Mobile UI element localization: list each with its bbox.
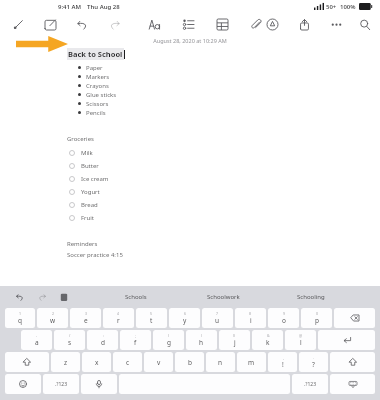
staticText: Scissors	[86, 100, 109, 108]
button[interactable]: 3	[70, 308, 101, 328]
staticText: f	[134, 338, 137, 347]
staticText: 0	[316, 311, 319, 316]
button[interactable]: Schoolwork	[180, 286, 267, 307]
button[interactable]: (	[153, 330, 184, 350]
staticText: 2	[52, 311, 55, 316]
button[interactable]: 2	[37, 308, 68, 328]
staticText: .?123	[55, 381, 68, 388]
staticText: Reminders	[67, 240, 98, 248]
button[interactable]: Dictation	[81, 374, 117, 394]
staticText: Thu Aug 28	[87, 3, 120, 11]
button[interactable]: Emoji	[5, 374, 41, 394]
staticText: e	[84, 316, 88, 325]
button[interactable]: Checklist	[180, 16, 196, 32]
button[interactable]: Undo	[74, 16, 90, 32]
button[interactable]: m	[237, 352, 266, 372]
button[interactable]: Search	[360, 16, 370, 32]
button[interactable]: Format	[146, 16, 162, 32]
button[interactable]: Fruit	[67, 211, 380, 224]
button[interactable]: Backspace	[334, 308, 375, 328]
button[interactable]: Ice cream	[67, 172, 380, 185]
button[interactable]: n	[206, 352, 235, 372]
button[interactable]: .?123	[43, 374, 79, 394]
staticText: Bread	[81, 201, 98, 209]
button[interactable]: v	[144, 352, 173, 372]
staticText: p	[315, 316, 319, 325]
button[interactable]: Paper	[67, 63, 380, 72]
button[interactable]: 7	[202, 308, 233, 328]
staticText: Paper	[86, 64, 103, 72]
button[interactable]: Redo	[106, 16, 122, 32]
button[interactable]: .	[299, 352, 328, 372]
button[interactable]: 1	[5, 308, 35, 328]
button[interactable]: Markers	[67, 72, 380, 81]
button[interactable]: Schools	[92, 286, 180, 307]
button[interactable]: Yogurt	[67, 185, 380, 198]
staticText: q	[18, 316, 22, 325]
staticText: Milk	[81, 149, 93, 157]
button[interactable]: )	[186, 330, 217, 350]
button[interactable]: 6	[169, 308, 200, 328]
button[interactable]: Butter	[67, 159, 380, 172]
button[interactable]: More	[328, 16, 344, 32]
button[interactable]: Return	[318, 330, 375, 350]
staticText: v	[157, 358, 161, 367]
button[interactable]: Hide keyboard	[330, 374, 375, 394]
button[interactable]: 4	[103, 308, 134, 328]
staticText: h	[199, 338, 204, 347]
button[interactable]: Markup	[10, 16, 26, 32]
button[interactable]: Compose	[42, 16, 58, 32]
staticText: Schoolwork	[207, 293, 240, 301]
staticText: k	[266, 338, 270, 347]
button[interactable]: Redo	[36, 291, 48, 303]
button[interactable]: z	[51, 352, 80, 372]
button[interactable]: Bread	[67, 198, 380, 211]
staticText: ?	[312, 360, 315, 369]
button[interactable]: Table	[214, 16, 230, 32]
staticText: n	[218, 358, 223, 367]
button[interactable]: 0	[301, 308, 332, 328]
button[interactable]: Shift	[5, 352, 49, 372]
staticText: t	[150, 316, 153, 325]
button[interactable]: /	[54, 330, 85, 350]
staticText: (	[168, 333, 170, 338]
button[interactable]: x	[82, 352, 111, 372]
staticText: )	[201, 333, 203, 338]
button[interactable]: Shift	[330, 352, 375, 372]
button[interactable]: Schooling	[267, 286, 354, 307]
button[interactable]: 9	[268, 308, 299, 328]
button[interactable]: Share	[296, 16, 312, 32]
button[interactable]: 5	[136, 308, 167, 328]
staticText: Fruit	[81, 214, 95, 222]
button[interactable]: c	[113, 352, 142, 372]
button[interactable]: &	[252, 330, 283, 350]
button[interactable]: Camera	[264, 16, 280, 32]
button[interactable]: Undo	[14, 291, 26, 303]
button[interactable]: Pencils	[67, 108, 380, 117]
button[interactable]: b	[175, 352, 204, 372]
button[interactable]: -	[21, 330, 52, 350]
button[interactable]: ,	[268, 352, 297, 372]
button[interactable]: Scissors	[67, 99, 380, 108]
staticText: Crayons	[86, 82, 109, 90]
staticText: -	[36, 333, 38, 338]
button[interactable]: Attach	[248, 16, 264, 32]
staticText: !	[282, 360, 284, 369]
button[interactable]: ;	[120, 330, 151, 350]
button[interactable]: Paste	[58, 291, 70, 303]
button[interactable]: :	[87, 330, 118, 350]
button[interactable]: $	[219, 330, 250, 350]
staticText: x	[95, 358, 99, 367]
button[interactable]: .?123	[292, 374, 328, 394]
button[interactable]: Crayons	[67, 81, 380, 90]
button[interactable]: Glue sticks	[67, 90, 380, 99]
staticText: @	[299, 333, 303, 338]
staticText: Soccer practice 4:15	[67, 251, 123, 259]
staticText: ;	[135, 333, 136, 338]
staticText: Markers	[86, 73, 110, 81]
button[interactable]: @	[285, 330, 316, 350]
button[interactable]: Milk	[67, 146, 380, 159]
button[interactable]: 8	[235, 308, 266, 328]
button[interactable]: Back to School	[68, 49, 123, 59]
